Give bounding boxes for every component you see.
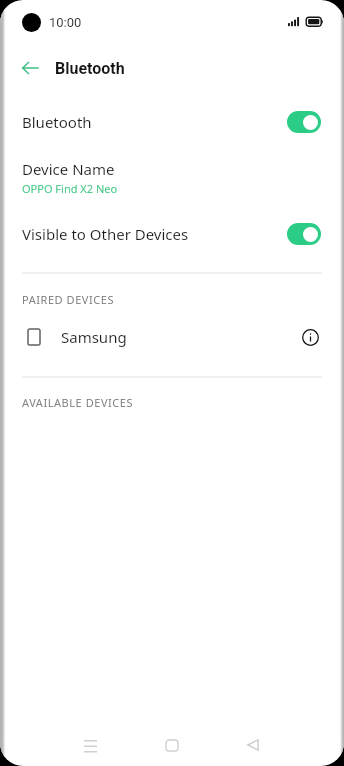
staticText: Bluetooth bbox=[55, 59, 125, 78]
button[interactable]: Device info bbox=[300, 327, 320, 347]
button[interactable]: Toggle bbox=[287, 223, 321, 245]
button[interactable]: Device Name bbox=[0, 151, 344, 204]
button[interactable]: Back bbox=[14, 52, 46, 84]
button[interactable]: Samsung bbox=[0, 317, 344, 357]
staticText: PAIRED DEVICES bbox=[22, 292, 114, 307]
staticText: Samsung bbox=[61, 327, 127, 347]
button[interactable]: Recents bbox=[70, 725, 110, 765]
staticText: Device Name bbox=[22, 159, 115, 179]
button[interactable]: Home bbox=[152, 725, 192, 765]
button[interactable]: Toggle bbox=[287, 111, 321, 133]
staticText: Visible to Other Devices bbox=[22, 224, 189, 244]
staticText: 10:00 bbox=[49, 15, 82, 30]
button[interactable]: Back bbox=[233, 725, 273, 765]
button[interactable]: Bluetooth bbox=[0, 97, 344, 147]
button[interactable]: Visible to Other Devices bbox=[0, 209, 344, 259]
staticText: OPPO Find X2 Neo bbox=[22, 181, 118, 196]
staticText: AVAILABLE DEVICES bbox=[22, 395, 134, 410]
staticText: Bluetooth bbox=[22, 112, 92, 132]
